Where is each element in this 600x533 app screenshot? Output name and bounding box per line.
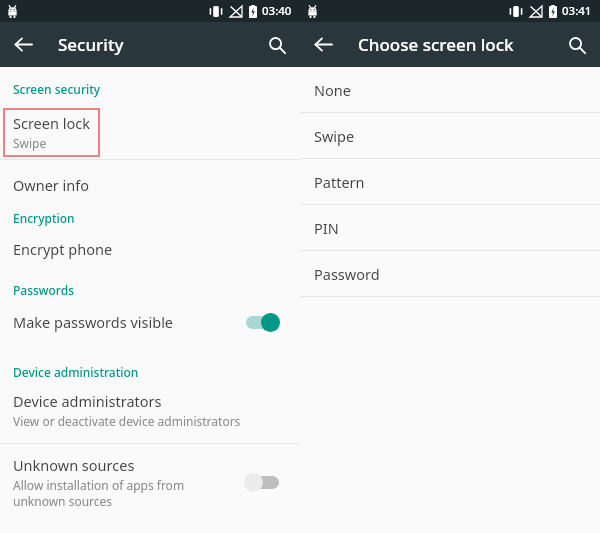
staticText: Allow installation of apps from unknown …: [13, 477, 228, 509]
button[interactable]: Encrypt phone: [0, 226, 300, 272]
staticText: Unknown sources: [13, 455, 135, 475]
button[interactable]: Device administrators: [0, 380, 300, 440]
staticText: Encrypt phone: [13, 239, 113, 259]
button[interactable]: Owner info: [0, 160, 300, 210]
button[interactable]: PIN: [300, 205, 600, 250]
staticText: Swipe: [314, 126, 355, 146]
button[interactable]: Back: [0, 22, 46, 67]
staticText: 03:40: [262, 3, 292, 19]
staticText: View or deactivate device administrators: [13, 413, 241, 429]
button[interactable]: Search: [554, 22, 600, 67]
staticText: Passwords: [13, 282, 74, 298]
staticText: Device administrators: [13, 391, 162, 411]
button[interactable]: Swipe: [300, 113, 600, 158]
button[interactable]: Screen lock: [3, 108, 100, 157]
staticText: Password: [314, 264, 380, 284]
button[interactable]: Back: [300, 22, 346, 67]
staticText: Swipe: [13, 135, 47, 151]
button[interactable]: Search: [254, 22, 300, 67]
staticText: 03:41: [562, 3, 592, 19]
staticText: Owner info: [13, 175, 90, 195]
staticText: Pattern: [314, 172, 365, 192]
staticText: Screen security: [13, 81, 101, 97]
staticText: Security: [58, 33, 124, 56]
staticText: PIN: [314, 218, 339, 238]
staticText: Device administration: [13, 364, 139, 380]
button[interactable]: Make passwords visible: [0, 298, 300, 346]
staticText: Screen lock: [13, 113, 90, 133]
staticText: Choose screen lock: [358, 33, 514, 56]
staticText: Make passwords visible: [13, 312, 174, 332]
button[interactable]: None: [300, 67, 600, 112]
staticText: Encryption: [13, 210, 75, 226]
button[interactable]: Unknown sources: [0, 444, 300, 520]
button[interactable]: Password: [300, 251, 600, 296]
staticText: None: [314, 80, 351, 100]
button[interactable]: Pattern: [300, 159, 600, 204]
